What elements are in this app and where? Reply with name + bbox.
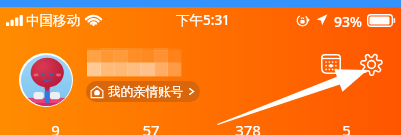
button[interactable]: Following: [119, 120, 183, 135]
button[interactable]: 我的亲情账号: [86, 81, 200, 102]
button[interactable]: Likes: [216, 120, 280, 135]
staticText: 93%: [334, 12, 362, 31]
staticText: 我的亲情账号: [108, 84, 183, 100]
button[interactable]: Fans: [23, 120, 87, 135]
staticText: 5: [342, 120, 351, 135]
button[interactable]: Settings: [357, 50, 385, 78]
button[interactable]: Calendar: [317, 50, 344, 77]
staticText: 378: [235, 120, 261, 135]
staticText: 9: [51, 120, 60, 135]
staticText: 57: [142, 120, 160, 135]
button[interactable]: Visitors: [314, 120, 378, 135]
staticText: 下午5:31: [176, 11, 230, 29]
button[interactable]: Profile avatar: [19, 53, 73, 107]
staticText: 中国移动: [26, 12, 80, 29]
